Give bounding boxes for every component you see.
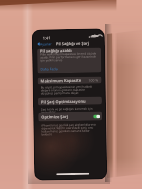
staticText: Pilin maksimum kapasitesi önemli ölçüde … (40, 51, 99, 62)
staticText: Şarj hızını ve pil sağlığını korumak içi… (41, 106, 98, 114)
button[interactable]: Pil sağlığı azaldı (37, 47, 101, 73)
other: Status icons (89, 34, 99, 38)
staticText: iPhone'unuz günlük şarj alışkanlıklarını… (41, 122, 98, 136)
button[interactable]: Maksimum Kapasite (37, 76, 102, 84)
button[interactable]: Optimize Şarj (38, 111, 102, 121)
staticText: Optimize Şarj (41, 114, 68, 119)
staticText: 1:41 (43, 35, 51, 40)
button[interactable]: Daha Fazla (37, 66, 58, 74)
button[interactable]: Ayarlar (37, 41, 53, 47)
staticText: Pil Şarj Optimizasyonu (41, 99, 86, 104)
other: Optimize Şarj açık (93, 114, 100, 119)
staticText: Ayarlar (40, 41, 52, 46)
staticText: Bu ölçüt, pil kapasitesinin yeni haldeki… (41, 84, 98, 95)
staticText: Maksimum Kapasite (40, 78, 82, 83)
staticText: 100 % (88, 77, 99, 83)
staticText: Pil Sağlığı ve Şarj (56, 41, 89, 46)
staticText: Pil sağlığı azaldı (40, 48, 72, 53)
button[interactable]: Pil Şarj Optimizasyonu (38, 96, 102, 105)
